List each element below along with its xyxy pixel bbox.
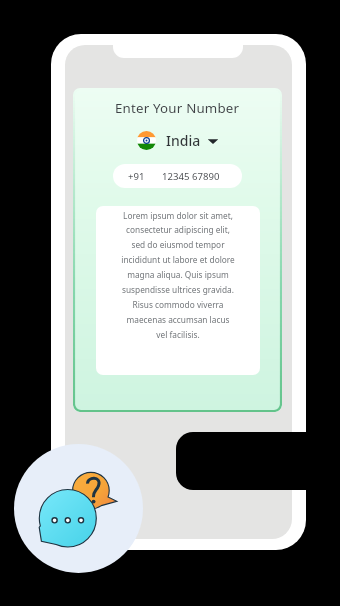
staticText: 12345 67890 [162,170,220,183]
staticText: +91 [128,170,145,183]
staticText: Lorem ipsum dolor sit amet, consectetur … [120,210,236,341]
staticText: Enter Your Number [115,99,240,117]
button[interactable]: India [135,129,221,152]
button[interactable]: +91 [113,164,242,188]
staticText: India [166,131,201,150]
button[interactable]: Help and support chat [14,444,143,573]
